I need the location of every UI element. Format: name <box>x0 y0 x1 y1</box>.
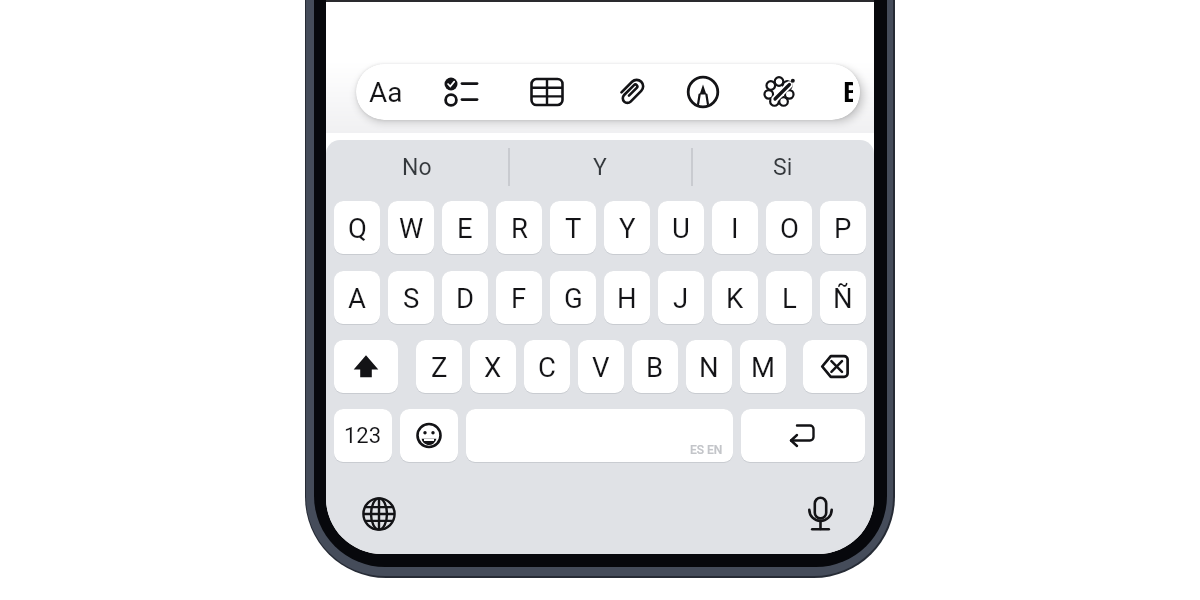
staticText: U <box>672 212 690 244</box>
staticText: K <box>726 282 744 314</box>
button[interactable] <box>741 409 865 462</box>
staticText: C <box>538 351 556 383</box>
staticText: G <box>564 282 583 314</box>
staticText: Q <box>348 212 367 244</box>
button[interactable] <box>358 493 400 535</box>
staticText: X <box>484 351 502 383</box>
button[interactable]: No <box>326 146 508 188</box>
button[interactable]: Ñ <box>820 271 866 324</box>
button[interactable]: N <box>686 340 732 393</box>
staticText: F <box>511 282 527 314</box>
staticText: No <box>402 154 432 181</box>
button[interactable]: ES EN <box>466 409 733 462</box>
button[interactable]: Z <box>416 340 462 393</box>
button[interactable]: X <box>470 340 516 393</box>
staticText: V <box>592 351 610 383</box>
button[interactable]: U <box>658 201 704 254</box>
staticText: P <box>834 212 852 244</box>
staticText: S <box>403 282 420 314</box>
staticText: B <box>843 76 853 109</box>
staticText: O <box>780 212 799 244</box>
button[interactable]: L <box>766 271 812 324</box>
staticText: T <box>565 212 582 244</box>
button[interactable]: V <box>578 340 624 393</box>
staticText: Ñ <box>833 282 853 314</box>
button[interactable]: S <box>388 271 434 324</box>
staticText: J <box>673 282 689 314</box>
button[interactable]: R <box>496 201 542 254</box>
button[interactable]: M <box>740 340 786 393</box>
button[interactable]: Aa <box>356 64 860 120</box>
button[interactable] <box>334 340 398 393</box>
staticText: H <box>617 282 637 314</box>
staticText: Y <box>619 212 636 244</box>
staticText: L <box>782 282 797 314</box>
button[interactable]: F <box>496 271 542 324</box>
staticText: N <box>699 351 719 383</box>
staticText: R <box>511 212 528 244</box>
button[interactable]: E <box>442 201 488 254</box>
button[interactable]: Y <box>509 146 691 188</box>
button[interactable]: 123 <box>334 409 392 462</box>
staticText: Si <box>773 154 793 181</box>
button[interactable]: O <box>766 201 812 254</box>
button[interactable]: H <box>604 271 650 324</box>
staticText: E <box>457 212 473 244</box>
button[interactable]: J <box>658 271 704 324</box>
button[interactable]: G <box>550 271 596 324</box>
button[interactable]: K <box>712 271 758 324</box>
staticText: Z <box>431 351 448 383</box>
button[interactable]: Q <box>334 201 380 254</box>
button[interactable]: D <box>442 271 488 324</box>
button[interactable] <box>799 493 841 535</box>
staticText: M <box>751 351 776 383</box>
button[interactable]: T <box>550 201 596 254</box>
staticText: D <box>456 282 475 314</box>
staticText: ES EN <box>690 443 723 457</box>
staticText: I <box>731 212 739 244</box>
button[interactable] <box>400 409 458 462</box>
staticText: Y <box>593 154 607 181</box>
button[interactable]: Si <box>692 146 874 188</box>
staticText: Aa <box>369 76 403 109</box>
staticText: W <box>399 212 424 244</box>
button[interactable]: P <box>820 201 866 254</box>
button[interactable]: B <box>632 340 678 393</box>
staticText: A <box>348 282 366 314</box>
button[interactable]: W <box>388 201 434 254</box>
button[interactable]: C <box>524 340 570 393</box>
staticText: B <box>646 351 664 383</box>
button[interactable]: A <box>334 271 380 324</box>
button[interactable]: I <box>712 201 758 254</box>
button[interactable] <box>803 340 867 393</box>
button[interactable]: Y <box>604 201 650 254</box>
staticText: 123 <box>344 423 382 449</box>
